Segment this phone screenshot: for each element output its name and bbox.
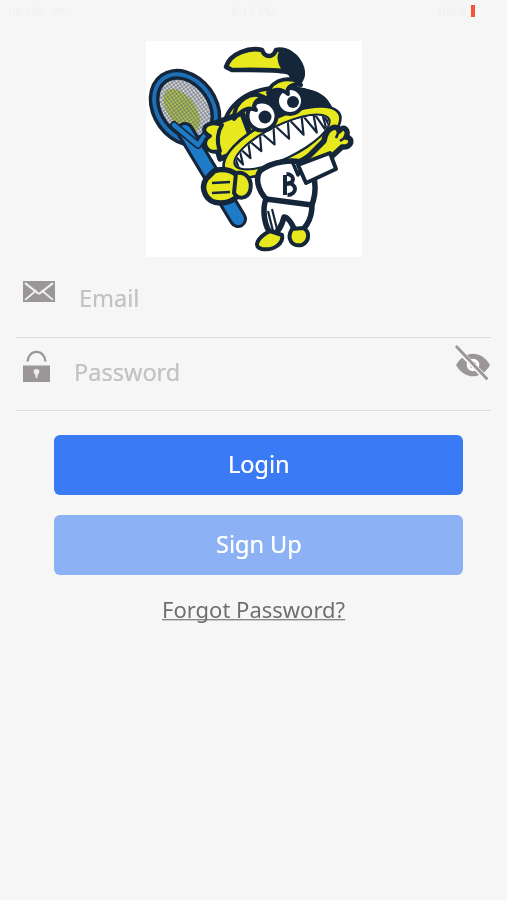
button[interactable]: Forgot Password? <box>158 592 350 626</box>
staticText: Email <box>79 282 140 314</box>
staticText: Password <box>74 356 181 388</box>
staticText: Forgot Password? <box>162 594 346 624</box>
button[interactable]: Login <box>54 435 463 495</box>
staticText: Sign Up <box>216 528 302 560</box>
button[interactable]: Sign Up <box>54 515 463 575</box>
button[interactable]: Toggle password visibility <box>450 342 496 388</box>
staticText: Login <box>228 448 290 480</box>
